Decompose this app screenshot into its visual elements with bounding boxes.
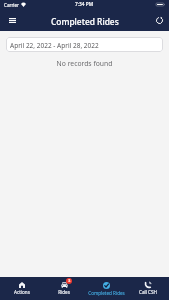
staticText: Rides [58,289,70,295]
staticText: Carrier [4,2,19,8]
button[interactable]: April 22, 2022 - April 28, 2022 [6,37,163,52]
button[interactable]: 3 [43,277,85,300]
staticText: Completed Rides [51,16,119,27]
button[interactable]: Actions [0,277,43,300]
staticText: Actions [14,289,30,295]
button[interactable]: Menu [5,13,19,27]
staticText: No records found [0,59,169,68]
button[interactable]: Call CSH [127,277,169,300]
button[interactable]: Refresh [152,13,166,27]
staticText: 3 [68,278,71,284]
staticText: Call CSH [139,289,157,295]
staticText: Completed Rides [88,290,125,296]
staticText: 7:34 PM [75,1,94,8]
button[interactable]: Completed Rides [85,277,127,300]
staticText: April 22, 2022 - April 28, 2022 [10,41,99,50]
